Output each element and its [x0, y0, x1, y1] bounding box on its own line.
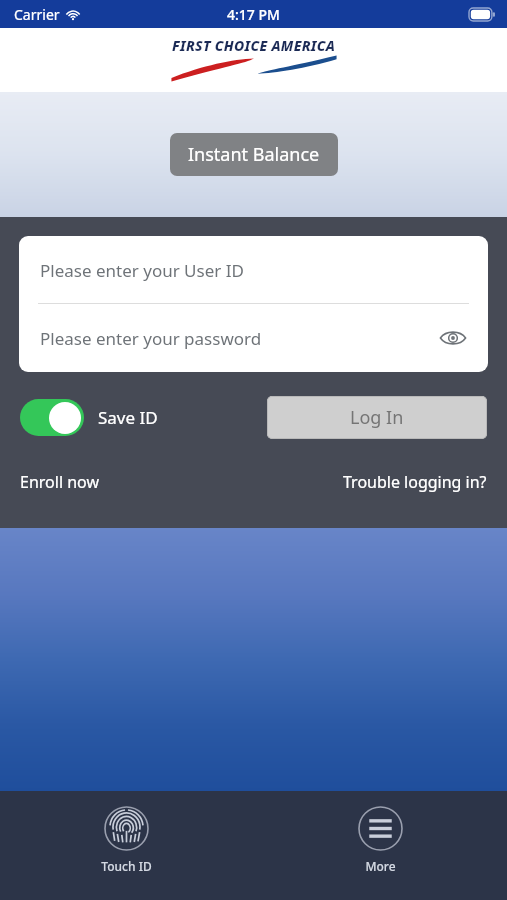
button[interactable]: Touch ID — [87, 804, 166, 876]
staticText: Please enter your password — [40, 327, 262, 350]
staticText: 4:17 PM — [227, 5, 280, 24]
staticText: Carrier — [14, 5, 60, 24]
button[interactable]: Please enter your User ID — [19, 236, 488, 304]
staticText: Touch ID — [101, 858, 152, 874]
button[interactable]: Trouble logging in? — [343, 465, 487, 499]
staticText: Trouble logging in? — [343, 471, 487, 493]
staticText: Please enter your User ID — [40, 259, 244, 282]
button[interactable]: Enroll now — [20, 465, 99, 499]
button[interactable]: Show password — [436, 321, 470, 355]
button[interactable]: Instant Balance — [170, 133, 338, 176]
button[interactable]: More — [344, 804, 417, 876]
staticText: Enroll now — [20, 471, 99, 493]
staticText: Save ID — [98, 406, 158, 429]
button[interactable]: Please enter your password — [19, 304, 488, 372]
staticText: FIRST CHOICE AMERICA — [172, 36, 336, 55]
staticText: More — [365, 858, 396, 874]
staticText: Log In — [350, 405, 404, 430]
button[interactable]: Save ID — [20, 399, 158, 436]
button[interactable]: Log In — [267, 396, 487, 439]
staticText: Instant Balance — [188, 142, 320, 167]
